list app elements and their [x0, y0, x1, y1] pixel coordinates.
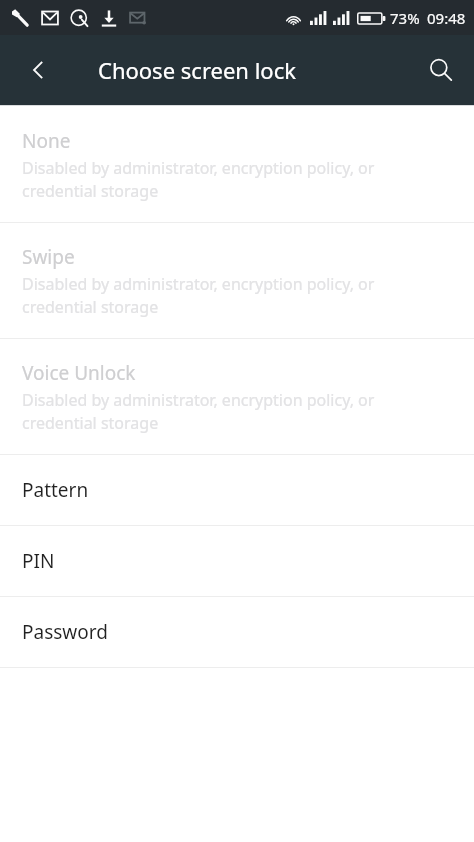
staticText: Voice Unlock	[22, 360, 136, 386]
staticText: Disabled by administrator, encryption po…	[22, 157, 414, 202]
staticText: Password	[22, 619, 108, 645]
staticText: PIN	[22, 548, 55, 574]
button: None	[0, 107, 474, 222]
button: Voice Unlock	[0, 339, 474, 454]
button[interactable]: Password	[0, 597, 474, 667]
staticText: Choose screen lock	[98, 55, 296, 85]
staticText: Pattern	[22, 477, 89, 503]
button: Swipe	[0, 223, 474, 338]
button[interactable]: Navigate up	[14, 46, 62, 94]
staticText: 09:48	[427, 8, 466, 28]
staticText: Disabled by administrator, encryption po…	[22, 389, 414, 434]
staticText: None	[22, 128, 71, 154]
button[interactable]: Search	[417, 46, 465, 94]
button[interactable]: Pattern	[0, 455, 474, 525]
staticText: Disabled by administrator, encryption po…	[22, 273, 414, 318]
staticText: 73%	[390, 8, 420, 28]
button[interactable]: PIN	[0, 526, 474, 596]
staticText: Swipe	[22, 244, 75, 270]
